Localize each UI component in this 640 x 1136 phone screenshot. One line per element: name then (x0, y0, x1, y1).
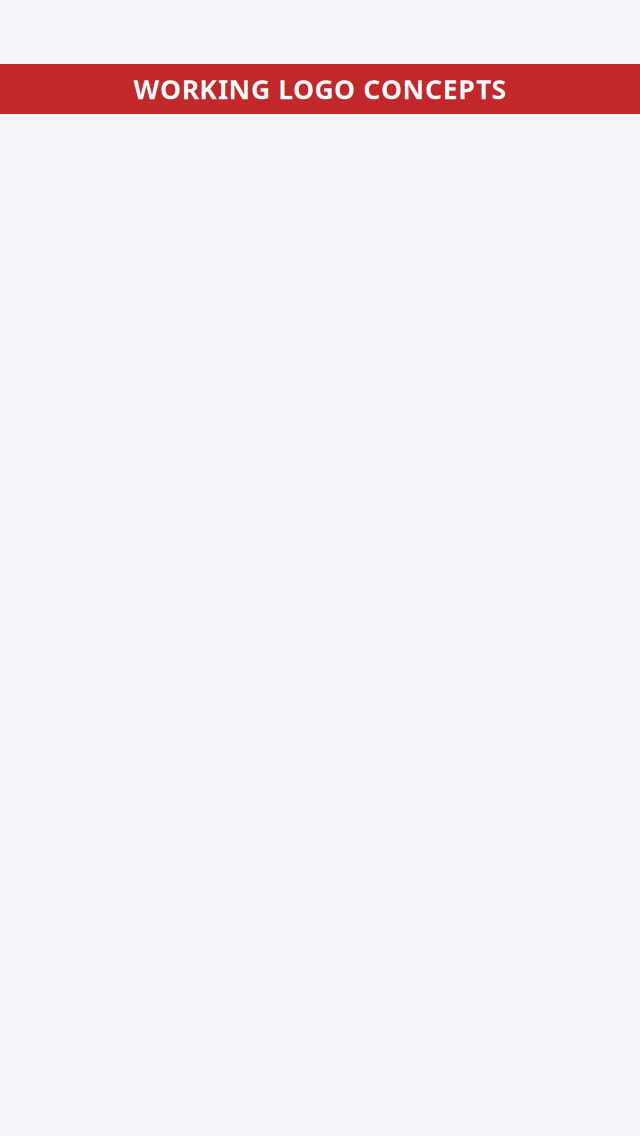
staticText: WORKING LOGO CONCEPTS (133, 71, 506, 107)
button[interactable]: WORKING LOGO CONCEPTS (0, 64, 640, 114)
